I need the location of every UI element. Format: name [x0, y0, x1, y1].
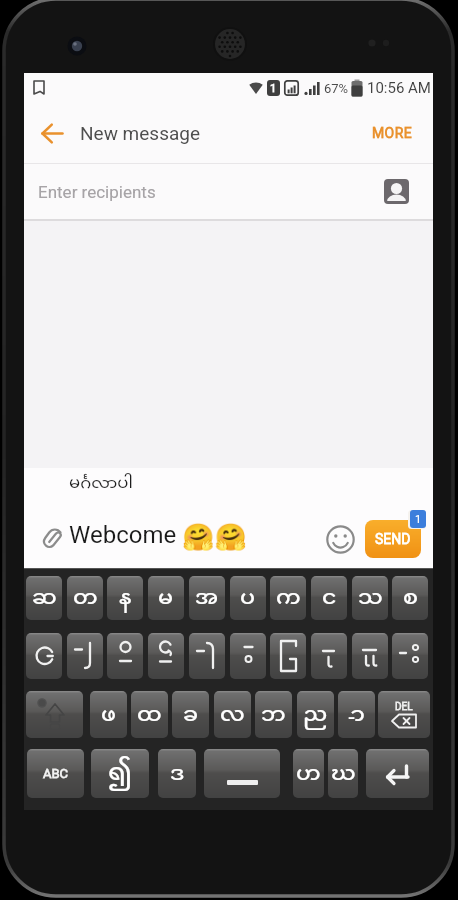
staticText: ဃ — [331, 759, 356, 789]
staticText: ဖ — [101, 700, 116, 730]
button[interactable] — [323, 522, 357, 556]
button[interactable] — [35, 518, 69, 554]
button[interactable] — [270, 633, 306, 679]
staticText: န — [119, 583, 132, 613]
button[interactable]: ပ — [230, 576, 266, 620]
button[interactable] — [26, 691, 83, 738]
staticText: -ာ — [348, 700, 365, 730]
staticText: တ — [73, 583, 98, 613]
button[interactable] — [67, 633, 103, 679]
staticText: DEL — [395, 701, 413, 713]
staticText: ဒ — [170, 759, 185, 789]
button[interactable]: မ — [148, 576, 184, 620]
staticText: မ — [158, 583, 174, 613]
staticText: သ — [358, 583, 383, 613]
staticText: ၍ — [108, 756, 133, 791]
staticText: 1 — [415, 513, 422, 526]
button[interactable]: ဖ — [90, 691, 127, 738]
staticText: 10:56 AM — [367, 79, 431, 97]
staticText: ဟ — [296, 759, 321, 789]
staticText: ABC — [43, 766, 69, 781]
button[interactable]: MORE — [361, 116, 423, 150]
button[interactable]: SEND — [365, 520, 421, 558]
staticText: MORE — [372, 125, 413, 141]
button[interactable]: Enter recipients — [24, 164, 433, 219]
button[interactable] — [366, 749, 429, 798]
staticText: New message — [80, 122, 201, 144]
staticText: ဘ — [261, 700, 286, 730]
staticText: Webcome — [69, 521, 177, 549]
staticText: က — [276, 583, 301, 613]
button[interactable]: န — [107, 576, 143, 620]
staticText: ည — [303, 700, 328, 730]
staticText: ပ — [240, 583, 256, 613]
button[interactable] — [36, 117, 69, 150]
button[interactable]: ဃ — [328, 749, 358, 798]
button[interactable]: ခ — [172, 691, 209, 738]
staticText: င — [322, 583, 337, 613]
button[interactable]: ဆ — [26, 576, 62, 620]
staticText: စ — [403, 583, 418, 613]
button[interactable]: ထ — [131, 691, 168, 738]
button[interactable] — [107, 633, 143, 679]
button[interactable]: အ — [189, 576, 225, 620]
button[interactable]: က — [270, 576, 306, 620]
button[interactable]: လ — [214, 691, 251, 738]
button[interactable]: ဟ — [293, 749, 324, 798]
button[interactable] — [230, 633, 266, 679]
button[interactable] — [384, 179, 409, 204]
staticText: Enter recipients — [38, 182, 156, 202]
button[interactable]: ABC — [27, 749, 84, 798]
staticText: မင်္ဂလာပါ — [69, 473, 133, 495]
staticText: 1 — [270, 82, 277, 95]
button[interactable] — [189, 633, 225, 679]
button[interactable]: စ — [392, 576, 428, 620]
button[interactable] — [148, 633, 184, 679]
button[interactable]: ည — [297, 691, 334, 738]
button[interactable] — [26, 633, 62, 679]
staticText: ထ — [137, 700, 162, 730]
button[interactable]: သ — [352, 576, 388, 620]
staticText: လ — [220, 700, 245, 730]
staticText: အ — [195, 583, 219, 613]
button[interactable] — [204, 749, 280, 798]
button[interactable]: ၍ — [91, 749, 149, 798]
button[interactable]: DEL — [378, 691, 430, 738]
button[interactable]: င — [311, 576, 347, 620]
button[interactable]: -ာ — [338, 691, 375, 738]
button[interactable]: တ — [67, 576, 103, 620]
button[interactable] — [392, 633, 428, 679]
staticText: ဆ — [32, 583, 57, 613]
button[interactable]: ဘ — [255, 691, 292, 738]
button[interactable] — [352, 633, 388, 679]
staticText: ခ — [183, 700, 199, 730]
staticText: 🤗🤗 — [182, 522, 247, 553]
button[interactable] — [311, 633, 347, 679]
staticText: 67% — [324, 81, 349, 96]
staticText: SEND — [375, 531, 411, 547]
button[interactable]: ဒ — [158, 749, 196, 798]
